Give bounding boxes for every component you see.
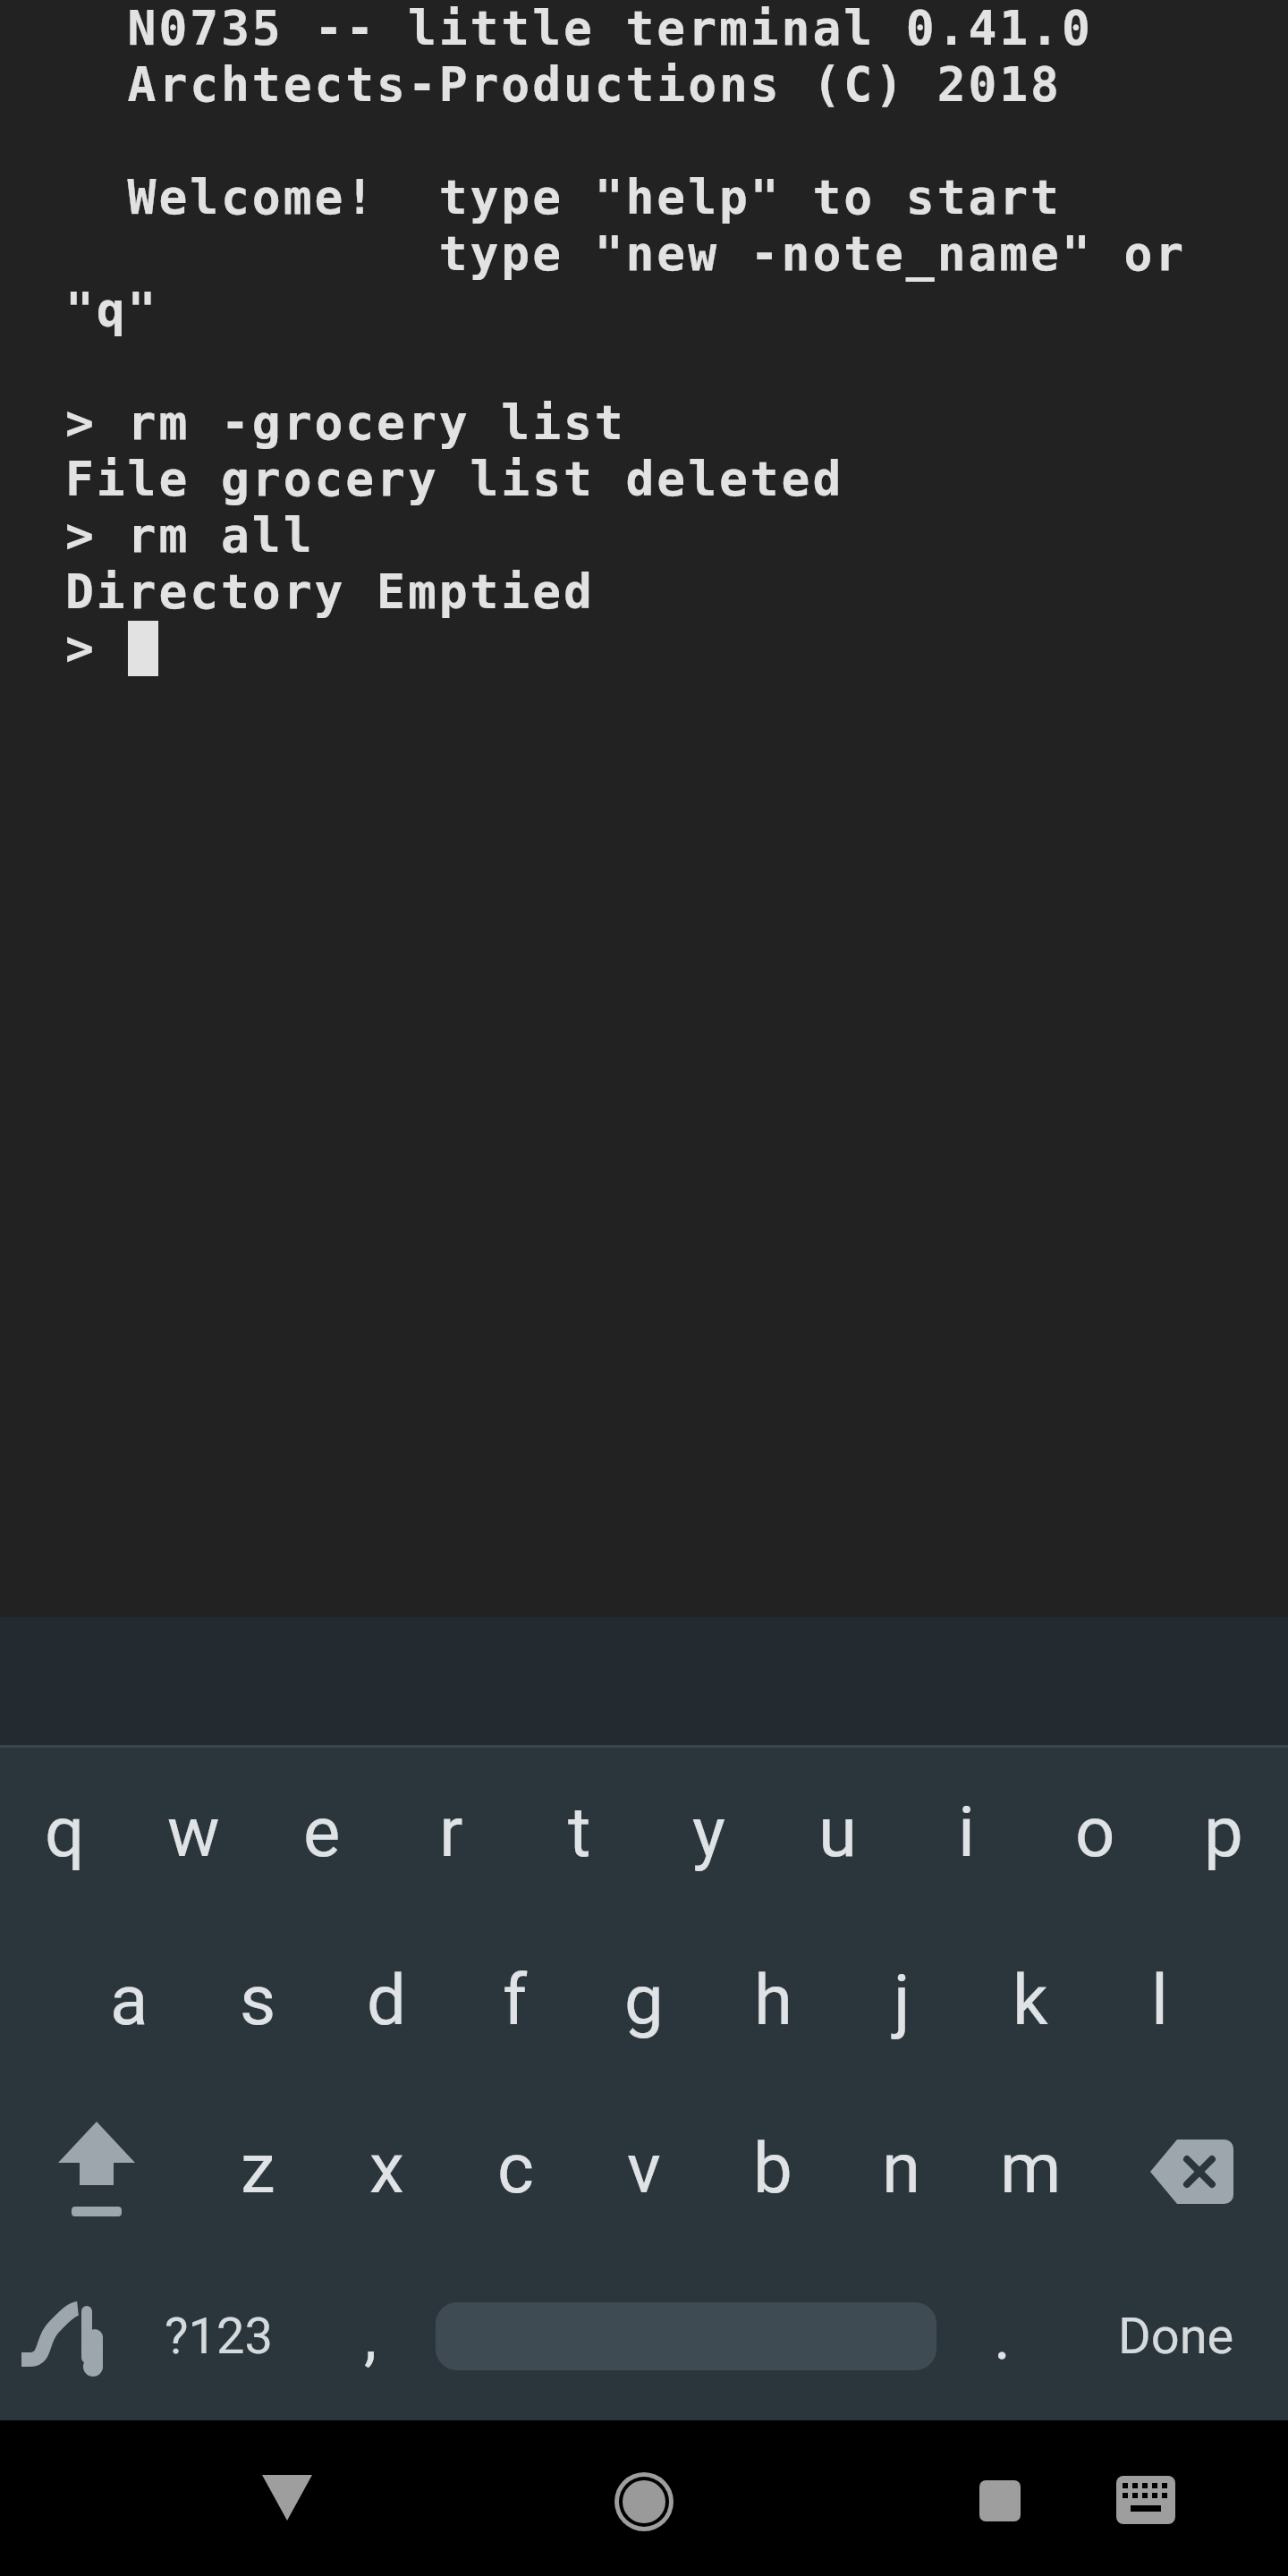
staticText: > rm -grocery list: [65, 395, 626, 451]
button[interactable]: [433, 2252, 939, 2420]
staticText: g: [624, 1960, 664, 2041]
staticText: d: [367, 1960, 406, 2041]
button[interactable]: [233, 2448, 341, 2555]
staticText: h: [754, 1960, 792, 2041]
staticText: k: [1013, 1960, 1048, 2041]
staticText: x: [369, 2128, 404, 2209]
staticText: t: [568, 1792, 591, 1873]
staticText: e: [303, 1792, 341, 1873]
button[interactable]: ,: [308, 2252, 433, 2420]
staticText: n: [882, 2128, 921, 2209]
button[interactable]: [0, 2084, 193, 2252]
staticText: Archtects-Productions (C) 2018: [65, 57, 1062, 113]
button[interactable]: c: [451, 2084, 580, 2252]
button[interactable]: u: [773, 1748, 902, 1916]
button[interactable]: Done: [1064, 2252, 1288, 2420]
button[interactable]: h: [708, 1916, 837, 2084]
staticText: y: [692, 1792, 725, 1873]
button[interactable]: g: [580, 1916, 708, 2084]
staticText: r: [439, 1792, 463, 1873]
staticText: z: [241, 2128, 275, 2209]
button[interactable]: .: [939, 2252, 1064, 2420]
button[interactable]: p: [1159, 1748, 1288, 1916]
staticText: i: [958, 1792, 975, 1873]
button[interactable]: y: [644, 1748, 773, 1916]
staticText: .: [994, 2299, 1011, 2374]
staticText: ?123: [165, 2307, 273, 2366]
staticText: > rm all: [65, 508, 315, 563]
button[interactable]: x: [322, 2084, 451, 2252]
staticText: Directory Emptied: [65, 564, 595, 620]
button[interactable]: s: [193, 1916, 322, 2084]
button[interactable]: t: [515, 1748, 644, 1916]
button[interactable]: [1091, 2448, 1199, 2555]
staticText: o: [1075, 1792, 1115, 1873]
button[interactable]: q: [0, 1748, 129, 1916]
button[interactable]: [946, 2448, 1054, 2555]
staticText: q: [45, 1792, 85, 1873]
button[interactable]: j: [837, 1916, 966, 2084]
button[interactable]: [0, 2252, 129, 2420]
staticText: b: [753, 2128, 792, 2209]
button[interactable]: i: [902, 1748, 1030, 1916]
button[interactable]: [590, 2448, 698, 2555]
button[interactable]: e: [258, 1748, 386, 1916]
button[interactable]: r: [386, 1748, 515, 1916]
button[interactable]: l: [1095, 1916, 1224, 2084]
staticText: Done: [1118, 2307, 1234, 2366]
button[interactable]: k: [966, 1916, 1095, 2084]
staticText: c: [497, 2128, 534, 2209]
staticText: s: [240, 1960, 276, 2041]
staticText: ,: [364, 2299, 377, 2374]
button[interactable]: n: [837, 2084, 966, 2252]
button[interactable]: d: [322, 1916, 451, 2084]
button[interactable]: a: [64, 1916, 193, 2084]
staticText: File grocery list deleted: [65, 452, 844, 507]
staticText: N0735 -- little terminal 0.41.0: [65, 1, 1093, 56]
staticText: m: [1000, 2128, 1062, 2209]
staticText: >: [65, 621, 128, 676]
button[interactable]: [1095, 2084, 1288, 2252]
staticText: "q": [65, 283, 159, 338]
button[interactable]: m: [966, 2084, 1095, 2252]
button[interactable]: b: [708, 2084, 837, 2252]
button[interactable]: v: [580, 2084, 708, 2252]
staticText: f: [503, 1960, 528, 2041]
button[interactable]: w: [129, 1748, 258, 1916]
staticText: w: [167, 1792, 220, 1873]
staticText: l: [1151, 1960, 1168, 2041]
button[interactable]: f: [451, 1916, 580, 2084]
staticText: u: [818, 1792, 857, 1873]
staticText: j: [894, 1960, 911, 2041]
staticText: type "new -note_name" or: [65, 226, 1187, 282]
staticText: p: [1204, 1792, 1243, 1873]
staticText: v: [627, 2128, 661, 2209]
button[interactable]: ?123: [129, 2252, 308, 2420]
staticText: Welcome! type "help" to start: [65, 170, 1062, 225]
button[interactable]: o: [1030, 1748, 1159, 1916]
button[interactable]: z: [193, 2084, 322, 2252]
staticText: a: [110, 1960, 148, 2041]
